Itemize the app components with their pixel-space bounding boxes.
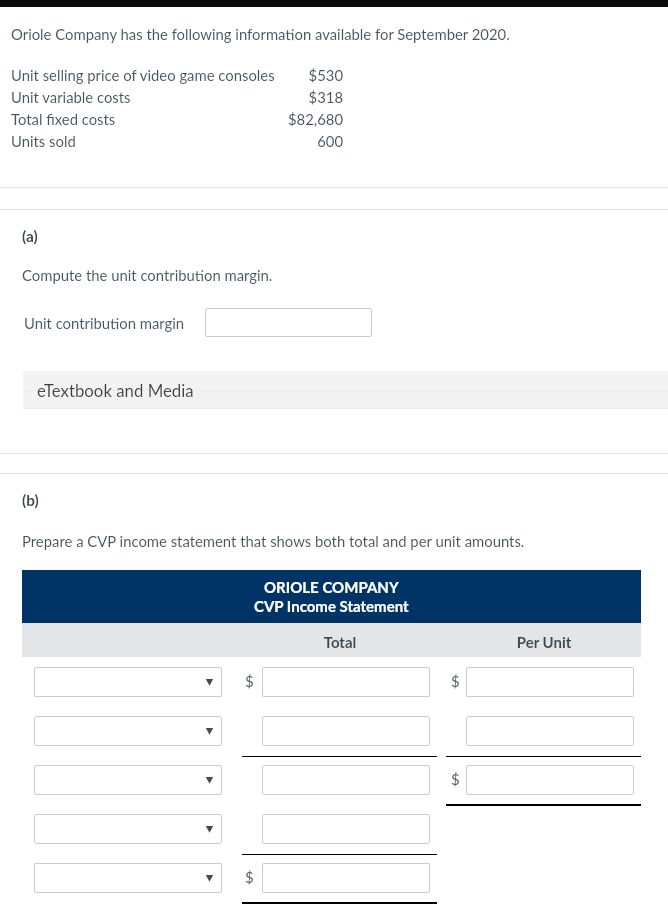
staticText: $82,680 [230,110,343,128]
staticText: Per Unit [449,633,639,651]
button[interactable]: Amount entry field [262,765,430,795]
staticText: Prepare a CVP income statement that show… [22,532,525,550]
button[interactable]: eTextbook and Media [23,371,668,409]
staticText: eTextbook and Media [37,380,194,400]
button[interactable]: Select account line item [34,814,222,844]
staticText: Compute the unit contribution margin. [22,266,273,284]
button[interactable]: Select account line item [34,863,222,893]
staticText: $ [245,672,254,690]
staticText: Oriole Company has the following informa… [11,25,510,43]
staticText: (a) [22,227,38,245]
staticText: $ [245,868,254,886]
staticText: $530 [230,66,343,84]
staticText: Unit selling price of video game console… [11,66,275,84]
staticText: Total [245,633,435,651]
staticText: $ [451,672,460,690]
staticText: CVP Income Statement [254,597,409,615]
button[interactable]: Select account line item [34,667,222,697]
staticText: Total fixed costs [11,110,116,128]
button[interactable]: Amount entry field [466,667,634,697]
staticText: Units sold [11,132,76,150]
staticText: $ [451,770,460,788]
button[interactable]: Select account line item [34,765,222,795]
button[interactable]: Amount entry field [262,863,430,893]
button[interactable]: Amount entry field [466,765,634,795]
staticText: 600 [230,132,343,150]
button[interactable]: Amount entry field [262,814,430,844]
staticText: Unit variable costs [11,88,131,106]
button[interactable]: Amount entry field [262,716,430,746]
button[interactable]: Amount entry field [262,667,430,697]
button[interactable]: Amount entry field [205,308,372,337]
staticText: (b) [22,491,39,509]
staticText: ORIOLE COMPANY [264,578,399,596]
button[interactable]: Select account line item [34,716,222,746]
staticText: $318 [230,88,343,106]
button[interactable]: Amount entry field [466,716,634,746]
staticText: Unit contribution margin [24,314,185,332]
